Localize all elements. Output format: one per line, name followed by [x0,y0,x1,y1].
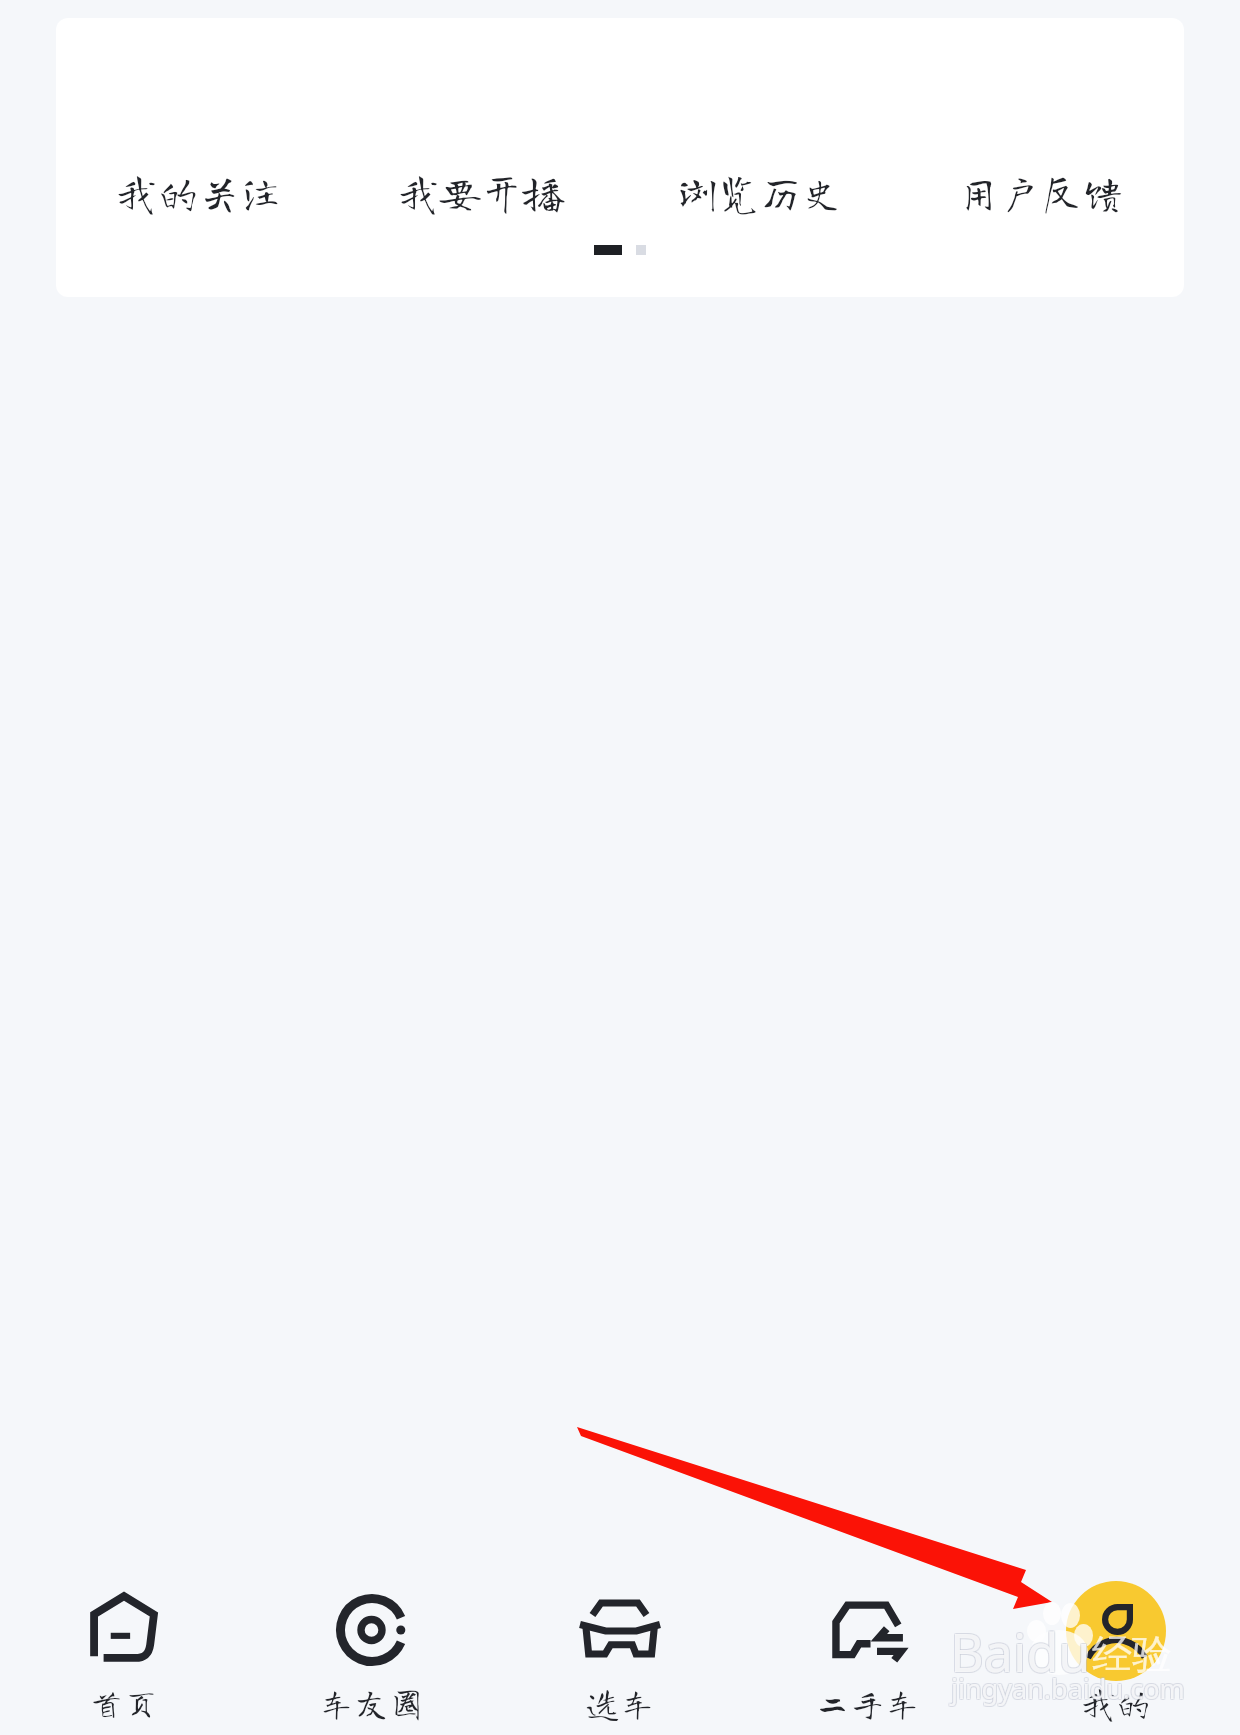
staticText: Baidu [950,1616,1091,1687]
staticText: 首页 [89,1685,160,1720]
staticText: 浏览历史 [677,171,844,213]
staticText: 我的 [1081,1685,1152,1720]
staticText: Baidu [949,1617,1090,1688]
staticText: Baidu [951,1616,1092,1687]
staticText: 选车 [585,1685,656,1720]
staticText: Baidu [951,1617,1092,1688]
staticText: Baidu [951,1615,1092,1686]
staticText: jingyan.baidu.com [951,1669,1185,1706]
staticText: jingyan.baidu.com [952,1671,1186,1708]
staticText: 车友圈 [319,1685,425,1720]
staticText: jingyan.baidu.com [950,1670,1184,1707]
staticText: 我的关注 [116,171,283,213]
button[interactable]: Choose car [496,1555,744,1735]
staticText: Baidu [950,1617,1091,1688]
staticText: 我要开播 [398,171,565,213]
button[interactable]: Community [248,1555,496,1735]
button[interactable]: Home [0,1555,248,1735]
button[interactable]: 我要开播 [384,157,579,227]
staticText: Baidu [949,1616,1090,1687]
staticText: Baidu [950,1615,1091,1686]
button[interactable]: 我的关注 [102,157,297,227]
staticText: jingyan.baidu.com [951,1670,1185,1707]
button[interactable]: 浏览历史 [663,157,858,227]
staticText: 经验 [1092,1629,1172,1679]
staticText: jingyan.baidu.com [952,1670,1186,1707]
staticText: jingyan.baidu.com [951,1671,1185,1708]
staticText: Baidu [949,1615,1090,1686]
button[interactable]: 用户反馈 [944,157,1139,227]
button[interactable]: Used cars [744,1555,992,1735]
button[interactable]: Profile [992,1555,1240,1735]
staticText: 用户反馈 [958,171,1125,213]
staticText: jingyan.baidu.com [950,1669,1184,1706]
staticText: jingyan.baidu.com [952,1669,1186,1706]
staticText: 二手车 [815,1685,921,1720]
staticText: jingyan.baidu.com [950,1671,1184,1708]
